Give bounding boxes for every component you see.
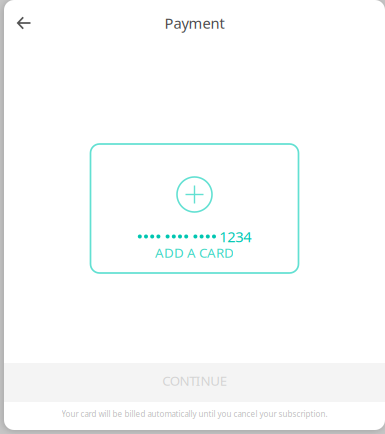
staticText: ADD A CARD [155,244,234,261]
staticText: Your card will be billed automatically u… [61,409,327,419]
staticText: CONTINUE [162,372,227,389]
button[interactable]: Back [4,1,44,45]
button[interactable]: 1234 [90,144,298,273]
staticText: 1234 [219,227,251,246]
button[interactable]: CONTINUE [4,363,385,402]
staticText: Payment [164,13,224,33]
